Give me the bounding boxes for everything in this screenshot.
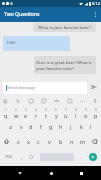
- staticText: a: [9, 123, 13, 130]
- staticText: r: [35, 112, 38, 119]
- staticText: Chill: [7, 40, 16, 46]
- staticText: s: [20, 123, 23, 130]
- button[interactable]: 4: [31, 107, 41, 119]
- button[interactable]: Back: [9, 166, 31, 180]
- button[interactable]: ?123: [0, 150, 16, 164]
- button[interactable]: m: [77, 134, 88, 148]
- button[interactable]: 2: [11, 107, 21, 119]
- staticText: b: [59, 138, 63, 145]
- staticText: 2: [15, 108, 17, 112]
- button[interactable]: More options: [89, 7, 101, 22]
- button[interactable]: 1: [0, 107, 11, 119]
- button[interactable]: v: [44, 134, 55, 148]
- button[interactable]: 8: [71, 107, 81, 119]
- staticText: g: [49, 123, 53, 130]
- button[interactable]: Stickers: [38, 95, 50, 107]
- staticText: 9: [85, 108, 87, 112]
- button[interactable]: c: [33, 134, 44, 148]
- staticText: n: [70, 138, 74, 145]
- button[interactable]: What is your favorite beer?: [33, 23, 96, 32]
- staticText: 6: [55, 108, 57, 112]
- staticText: 8:14: [92, 1, 100, 6]
- button[interactable]: j: [66, 119, 76, 134]
- button[interactable]: a: [5, 119, 16, 134]
- staticText: o: [84, 112, 88, 119]
- button[interactable]: Send message: [3, 82, 87, 94]
- staticText: x: [27, 138, 30, 145]
- staticText: 0: [95, 108, 97, 112]
- staticText: k: [80, 123, 83, 130]
- button[interactable]: Clipboard: [64, 95, 76, 107]
- button[interactable]: n: [66, 134, 77, 148]
- button[interactable]: 9: [81, 107, 91, 119]
- button[interactable]: Send: [86, 149, 100, 165]
- staticText: What is your favorite beer?: [38, 25, 91, 31]
- button[interactable]: .: [77, 150, 86, 164]
- staticText: i: [75, 112, 77, 119]
- button[interactable]: f: [36, 119, 46, 134]
- button[interactable]: Recent apps: [70, 166, 92, 180]
- button[interactable]: k: [76, 119, 86, 134]
- button[interactable]: h: [56, 119, 66, 134]
- staticText: Send message: [7, 85, 36, 91]
- button[interactable]: Emoji: [26, 150, 35, 164]
- staticText: 5: [45, 108, 47, 112]
- button[interactable]: Chill: [3, 36, 70, 51]
- staticText: f: [40, 123, 42, 130]
- staticText: Two Questions: [4, 11, 40, 18]
- staticText: l: [90, 123, 92, 130]
- button[interactable]: ,: [16, 150, 27, 164]
- button[interactable]: Shift: [0, 134, 13, 148]
- staticText: 4: [35, 108, 37, 112]
- staticText: u: [64, 112, 68, 119]
- button[interactable]: Google assistant: [0, 95, 11, 107]
- staticText: q: [4, 112, 8, 119]
- button[interactable]: Search: [12, 95, 24, 107]
- staticText: z: [17, 138, 20, 145]
- staticText: e: [24, 112, 28, 119]
- button[interactable]: GIF: [25, 95, 37, 107]
- button[interactable]: Voice input: [89, 95, 101, 107]
- staticText: 3: [25, 108, 27, 112]
- button[interactable]: s: [16, 119, 26, 134]
- staticText: abc: [54, 99, 60, 103]
- staticText: ,: [21, 154, 23, 160]
- button[interactable]: Ours is a great beer! What is your favor…: [34, 56, 96, 74]
- staticText: 8: [75, 108, 77, 112]
- button[interactable]: Backspace: [88, 134, 101, 148]
- staticText: t: [45, 112, 47, 119]
- button[interactable]: 5: [41, 107, 51, 119]
- button[interactable]: g: [46, 119, 56, 134]
- staticText: y: [55, 112, 58, 119]
- staticText: m: [80, 138, 86, 145]
- button[interactable]: More options: [76, 95, 88, 107]
- button[interactable]: Send: [87, 80, 101, 94]
- button[interactable]: 7: [61, 107, 71, 119]
- button[interactable]: x: [23, 134, 33, 148]
- button[interactable]: Translate: [51, 95, 63, 107]
- button[interactable]: d: [26, 119, 36, 134]
- staticText: .: [81, 154, 83, 160]
- button[interactable]: l: [86, 119, 96, 134]
- staticText: v: [48, 138, 51, 145]
- staticText: p: [94, 112, 98, 119]
- button[interactable]: 3: [21, 107, 31, 119]
- button[interactable]: z: [13, 134, 23, 148]
- staticText: h: [59, 123, 63, 130]
- button[interactable]: 6: [51, 107, 61, 119]
- staticText: 7: [65, 108, 67, 112]
- button[interactable]: 0: [91, 107, 101, 119]
- staticText: d: [29, 123, 33, 130]
- staticText: c: [37, 138, 40, 145]
- staticText: w: [14, 112, 19, 119]
- staticText: Ours is a great beer! What is your favor…: [36, 60, 94, 71]
- staticText: j: [70, 123, 72, 130]
- button[interactable]: b: [55, 134, 66, 148]
- button[interactable]: Home: [40, 166, 62, 180]
- staticText: ?123: [5, 155, 12, 159]
- staticText: 1: [5, 108, 7, 112]
